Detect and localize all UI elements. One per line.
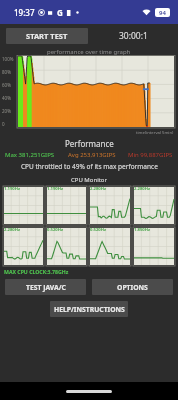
staticText: 1.190Hz: [4, 186, 21, 192]
staticText: 80%: [2, 69, 11, 75]
staticText: 94: [159, 9, 166, 17]
staticText: time(interval 5min): [136, 130, 174, 136]
button[interactable]: Home: [66, 390, 112, 393]
staticText: Performance: [65, 138, 114, 149]
staticText: 2.280Hz: [4, 227, 21, 233]
staticText: Min 99,887GIPS: [128, 151, 173, 159]
staticText: performance over time graph: [47, 48, 131, 56]
button[interactable]: TEST JAVA/C: [5, 279, 86, 295]
staticText: 30:00:1: [119, 30, 148, 42]
staticText: 1.850Hz: [134, 227, 151, 233]
staticText: 0.520Hz: [90, 227, 107, 233]
staticText: Avg 253,913GIPS: [68, 151, 116, 159]
staticText: 20%: [2, 108, 11, 114]
staticText: CPU throttled to 49% of its max performa…: [21, 162, 158, 171]
staticText: 100%: [2, 56, 14, 62]
staticText: OPTIONS: [117, 283, 148, 292]
staticText: CPU Monitor: [71, 176, 107, 184]
staticText: HELP/INSTRUCTIONS: [54, 305, 125, 314]
staticText: 0: [2, 121, 5, 127]
staticText: TEST JAVA/C: [26, 283, 66, 292]
button[interactable]: OPTIONS: [92, 279, 173, 295]
staticText: Max 381,251GIPS: [5, 151, 55, 159]
staticText: START TEST: [26, 31, 68, 41]
staticText: 0.520Hz: [47, 227, 64, 233]
button[interactable]: START TEST: [6, 28, 88, 44]
button[interactable]: HELP/INSTRUCTIONS: [50, 301, 128, 317]
staticText: G: [57, 7, 63, 18]
staticText: 2.280Hz: [134, 186, 151, 192]
staticText: MAX CPU CLOCK:3.78GHz: [4, 268, 69, 275]
staticText: 1.190Hz: [47, 186, 64, 192]
staticText: 19:37: [14, 7, 35, 18]
staticText: 2.280Hz: [90, 186, 107, 192]
staticText: 60%: [2, 82, 11, 88]
staticText: 40%: [2, 95, 11, 101]
